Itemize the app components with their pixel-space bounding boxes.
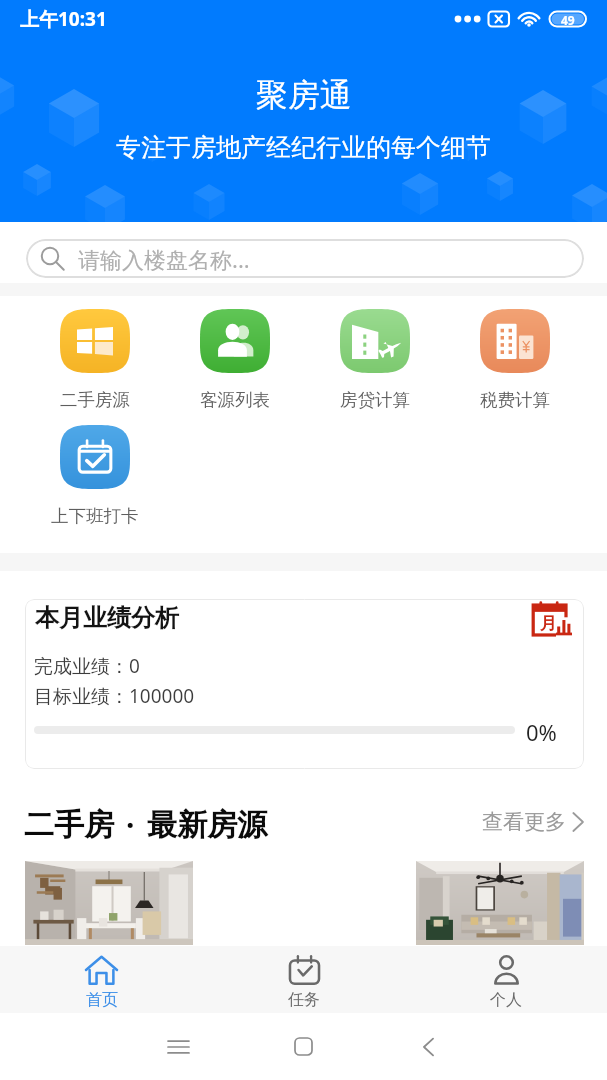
button[interactable]: 二手房 xyxy=(24,804,267,845)
staticText: 房贷计算 xyxy=(340,389,410,411)
button[interactable] xyxy=(416,861,584,945)
button[interactable]: 查看更多 xyxy=(474,803,607,841)
button[interactable]: Home xyxy=(241,1013,366,1080)
staticText: 个人 xyxy=(490,990,522,1010)
staticText: 税费计算 xyxy=(480,389,550,411)
staticText: 二手房 xyxy=(24,806,114,844)
staticText: 专注于房地产经纪行业的每个细节 xyxy=(116,132,491,163)
staticText: 客源列表 xyxy=(200,389,270,411)
staticText: 月 xyxy=(540,613,557,634)
staticText: · xyxy=(126,804,135,845)
button[interactable]: 二手房源 xyxy=(25,309,165,411)
button[interactable]: 请输入楼盘名称... xyxy=(26,239,584,278)
button[interactable]: 本月业绩分析 xyxy=(25,599,584,769)
button[interactable]: 税费计算 xyxy=(445,309,585,411)
button[interactable]: 个人 xyxy=(405,946,607,1013)
staticText: 查看更多 xyxy=(482,809,566,835)
button[interactable]: 首页 xyxy=(0,946,203,1013)
button[interactable] xyxy=(25,861,193,945)
button[interactable]: 上下班打卡 xyxy=(25,425,165,527)
button[interactable]: Recents xyxy=(116,1013,241,1080)
staticText: 上下班打卡 xyxy=(51,505,139,527)
staticText: 完成业绩：0 xyxy=(34,653,140,679)
staticText: 最新房源 xyxy=(147,806,267,844)
staticText: 上午10:31 xyxy=(20,6,107,32)
staticText: 任务 xyxy=(288,990,320,1010)
staticText: 聚房通 xyxy=(256,75,352,115)
button[interactable]: 房贷计算 xyxy=(305,309,445,411)
staticText: 49 xyxy=(561,12,575,27)
staticText: 0% xyxy=(526,717,557,747)
staticText: 请输入楼盘名称... xyxy=(78,244,250,274)
staticText: 本月业绩分析 xyxy=(35,603,179,633)
staticText: 首页 xyxy=(86,990,118,1010)
button[interactable]: 客源列表 xyxy=(165,309,305,411)
button[interactable]: 任务 xyxy=(203,946,405,1013)
staticText: 二手房源 xyxy=(60,389,130,411)
staticText: 目标业绩：100000 xyxy=(34,683,195,709)
button[interactable]: Back xyxy=(366,1013,491,1080)
